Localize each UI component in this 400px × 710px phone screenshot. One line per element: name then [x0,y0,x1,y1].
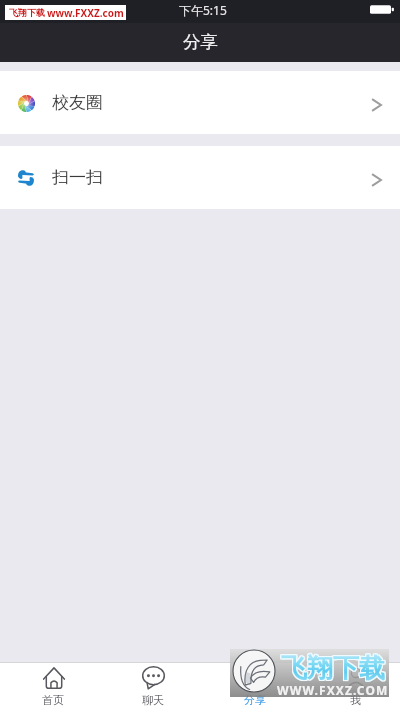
button[interactable]: 校友圈 [0,71,400,134]
staticText: 飞翔下载 [280,653,384,686]
staticText: WWW.FXXZ.COM [277,682,389,698]
staticText: 首页 [42,693,64,707]
staticText: www.FXXZ.com [47,6,124,20]
staticText: 飞翔下载 [281,651,385,684]
staticText: 下午5:15 [179,2,227,18]
staticText: 飞翔下载 [280,651,384,684]
staticText: 扫一扫 [52,167,103,188]
staticText: 校友圈 [52,92,103,113]
button[interactable]: Home [13,662,93,710]
button[interactable]: Share [215,662,295,710]
staticText: 飞翔下载 [281,652,385,685]
staticText: 分享 [183,31,218,53]
staticText: 飞翔下载 [282,652,386,685]
staticText: 分享 [244,693,266,707]
staticText: 飞翔下载 [282,653,386,686]
staticText: 飞翔下载 [282,651,386,684]
button[interactable]: Profile [315,662,395,710]
staticText: 聊天 [142,693,164,707]
button[interactable]: Chat [113,662,193,710]
staticText: 我 [350,693,361,707]
staticText: 飞翔下载 [9,7,45,18]
staticText: 飞翔下载 [281,653,385,686]
button[interactable]: 扫一扫 [0,146,400,209]
staticText: 飞翔下载 [280,652,384,685]
